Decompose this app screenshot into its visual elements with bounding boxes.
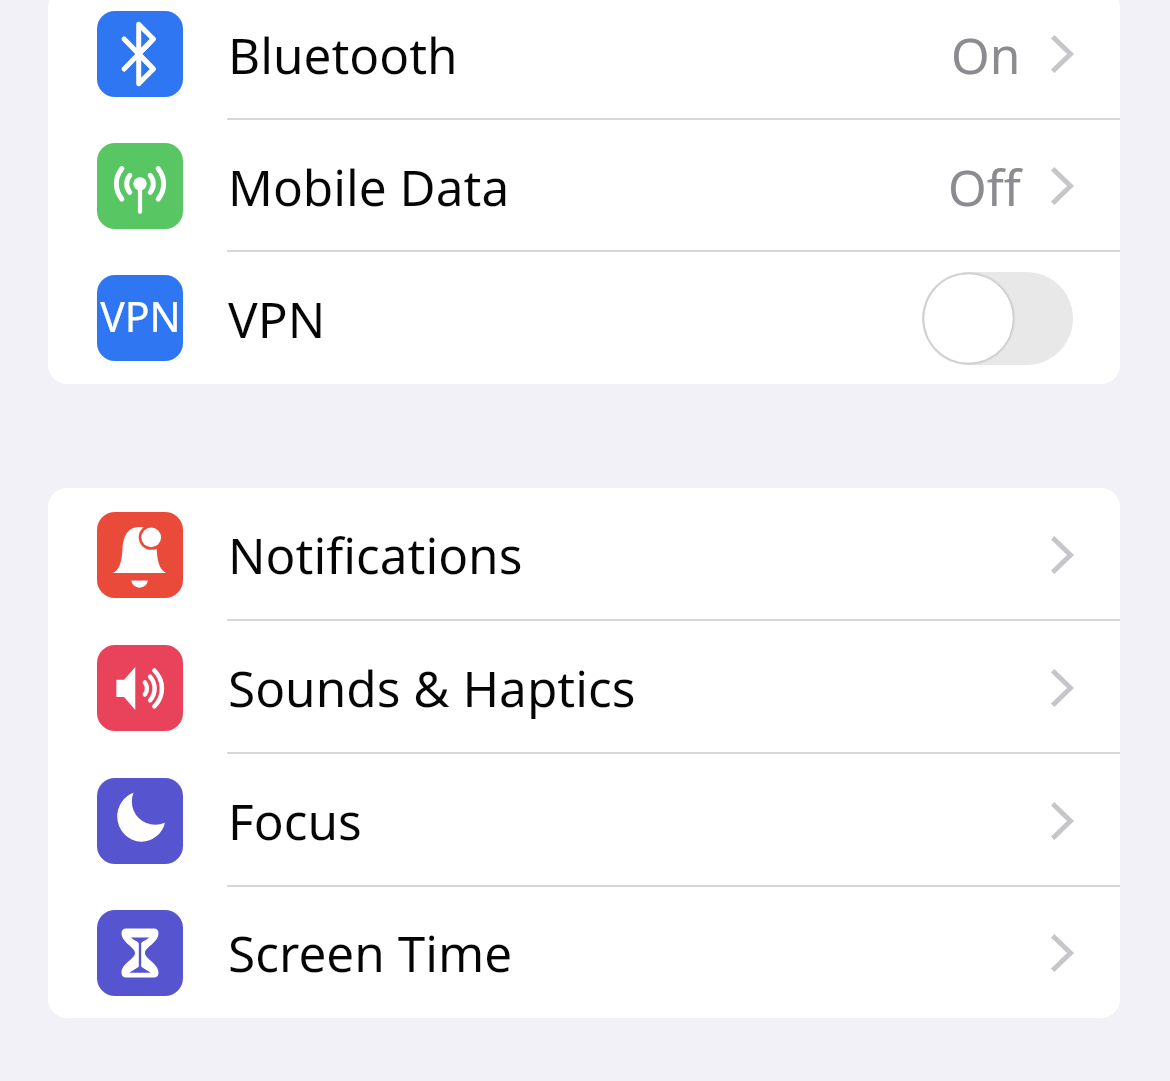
staticText: Sounds & Haptics xyxy=(228,654,636,721)
button[interactable]: VPN xyxy=(48,252,1120,384)
button[interactable]: Mobile Data xyxy=(48,120,1120,252)
button[interactable]: Notifications xyxy=(48,488,1120,621)
button[interactable]: VPN toggle xyxy=(922,272,1073,365)
staticText: Screen Time xyxy=(228,919,513,986)
staticText: On xyxy=(951,21,1021,88)
button[interactable]: Bluetooth xyxy=(48,0,1120,120)
staticText: Mobile Data xyxy=(228,153,510,220)
staticText: VPN xyxy=(100,288,181,344)
staticText: Focus xyxy=(228,787,362,854)
staticText: VPN xyxy=(228,285,326,352)
staticText: Bluetooth xyxy=(228,21,458,88)
button[interactable]: Sounds & Haptics xyxy=(48,621,1120,754)
button[interactable]: Screen Time xyxy=(48,887,1120,1018)
staticText: Notifications xyxy=(228,521,523,588)
staticText: Off xyxy=(948,153,1021,220)
button[interactable]: Focus xyxy=(48,754,1120,887)
